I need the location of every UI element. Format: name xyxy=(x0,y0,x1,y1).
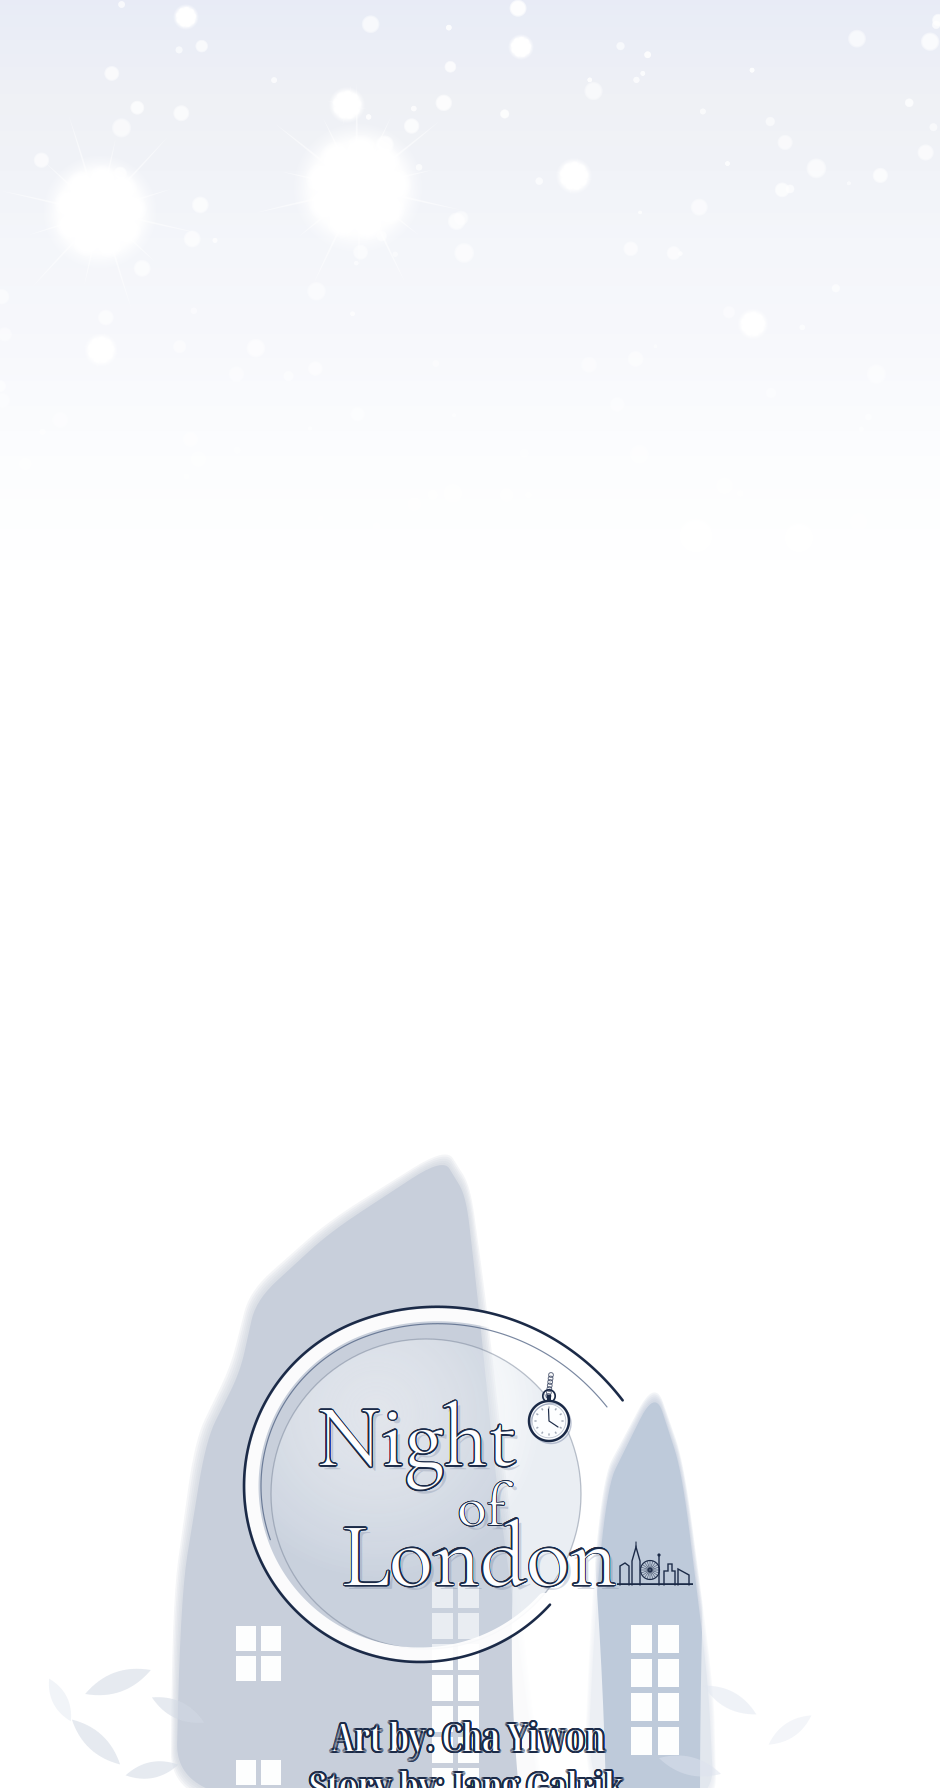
staticText: Story by: Jang Galrik xyxy=(311,1759,625,1788)
staticText: London xyxy=(340,1502,615,1612)
staticText: London xyxy=(341,1503,616,1612)
staticText: London xyxy=(340,1501,615,1611)
staticText: of xyxy=(457,1470,504,1542)
staticText: London xyxy=(343,1500,618,1610)
staticText: Story by: Jang Galrik xyxy=(309,1759,623,1788)
staticText: Night xyxy=(316,1382,517,1489)
staticText: London xyxy=(341,1499,616,1609)
staticText: Art by: Cha Yiwon xyxy=(330,1708,604,1760)
staticText: Story by: Jang Galrik xyxy=(310,1757,624,1788)
staticText: Night xyxy=(315,1384,516,1490)
staticText: of xyxy=(457,1470,504,1542)
staticText: Night xyxy=(321,1388,522,1494)
staticText: of xyxy=(457,1470,504,1543)
staticText: Art by: Cha Yiwon xyxy=(330,1712,604,1764)
staticText: London xyxy=(341,1501,617,1611)
staticText: Story by: Jang Galrik xyxy=(307,1758,621,1788)
staticText: Art by: Cha Yiwon xyxy=(333,1709,607,1762)
staticText: Art by: Cha Yiwon xyxy=(329,1710,603,1762)
staticText: of xyxy=(458,1470,505,1542)
staticText: Night xyxy=(317,1385,518,1492)
staticText: Story by: Jang Galrik xyxy=(310,1757,624,1788)
staticText: Night xyxy=(318,1384,519,1490)
staticText: of xyxy=(458,1469,505,1541)
staticText: London xyxy=(343,1502,618,1612)
staticText: of xyxy=(457,1469,504,1541)
staticText: London xyxy=(343,1501,618,1611)
staticText: Art by: Cha Yiwon xyxy=(332,1708,606,1760)
staticText: Night xyxy=(316,1384,517,1490)
staticText: of xyxy=(457,1469,504,1541)
staticText: Story by: Jang Galrik xyxy=(311,1759,625,1788)
staticText: Story by: Jang Galrik xyxy=(307,1759,621,1788)
staticText: Night xyxy=(315,1383,516,1489)
staticText: Art by: Cha Yiwon xyxy=(329,1709,603,1762)
staticText: of xyxy=(458,1470,505,1543)
staticText: Night xyxy=(316,1382,517,1489)
staticText: Art by: Cha Yiwon xyxy=(331,1708,605,1760)
staticText: Art by: Cha Yiwon xyxy=(332,1712,606,1764)
staticText: of xyxy=(457,1470,504,1543)
staticText: Night xyxy=(318,1383,519,1489)
staticText: of xyxy=(457,1469,504,1542)
staticText: Art by: Cha Yiwon xyxy=(329,1710,603,1763)
staticText: Story by: Jang Galrik xyxy=(307,1757,621,1788)
staticText: Story by: Jang Galrik xyxy=(309,1761,623,1788)
staticText: London xyxy=(343,1502,618,1611)
staticText: of xyxy=(458,1470,505,1543)
staticText: London xyxy=(340,1500,615,1610)
staticText: Art by: Cha Yiwon xyxy=(332,1708,606,1761)
staticText: Story by: Jang Galrik xyxy=(311,1758,625,1788)
staticText: Art by: Cha Yiwon xyxy=(333,1710,607,1763)
staticText: of xyxy=(457,1469,504,1542)
staticText: Art by: Cha Yiwon xyxy=(333,1710,607,1762)
staticText: Art by: Cha Yiwon xyxy=(329,1708,603,1761)
staticText: of xyxy=(457,1471,504,1543)
staticText: Story by: Jang Galrik xyxy=(308,1761,622,1788)
staticText: Night xyxy=(317,1382,518,1489)
staticText: London xyxy=(346,1505,621,1615)
staticText: Night xyxy=(318,1383,519,1490)
staticText: Story by: Jang Galrik xyxy=(307,1759,621,1788)
staticText: Story by: Jang Galrik xyxy=(310,1761,624,1788)
staticText: London xyxy=(341,1500,616,1609)
staticText: London xyxy=(340,1502,615,1611)
staticText: London xyxy=(342,1500,617,1609)
staticText: of xyxy=(458,1469,505,1542)
staticText: London xyxy=(343,1500,618,1610)
staticText: Story by: Jang Galrik xyxy=(310,1760,624,1788)
staticText: Art by: Cha Yiwon xyxy=(329,1711,603,1764)
staticText: of xyxy=(462,1474,509,1547)
staticText: of xyxy=(458,1469,505,1542)
staticText: Art by: Cha Yiwon xyxy=(331,1712,605,1764)
staticText: Night xyxy=(316,1385,517,1492)
staticText: Night xyxy=(315,1384,516,1491)
staticText: Night xyxy=(318,1385,519,1491)
staticText: of xyxy=(457,1470,504,1543)
staticText: Story by: Jang Galrik xyxy=(309,1757,623,1788)
staticText: Art by: Cha Yiwon xyxy=(331,1710,605,1762)
staticText: London xyxy=(340,1500,615,1610)
staticText: Story by: Jang Galrik xyxy=(308,1757,622,1788)
staticText: Night xyxy=(316,1385,517,1492)
staticText: of xyxy=(458,1470,505,1543)
staticText: Night xyxy=(315,1385,516,1491)
staticText: Night xyxy=(318,1384,519,1491)
staticText: Art by: Cha Yiwon xyxy=(332,1711,606,1764)
staticText: Night xyxy=(315,1383,516,1490)
staticText: London xyxy=(341,1503,616,1612)
staticText: London xyxy=(342,1503,617,1612)
staticText: Story by: Jang Galrik xyxy=(307,1760,621,1788)
